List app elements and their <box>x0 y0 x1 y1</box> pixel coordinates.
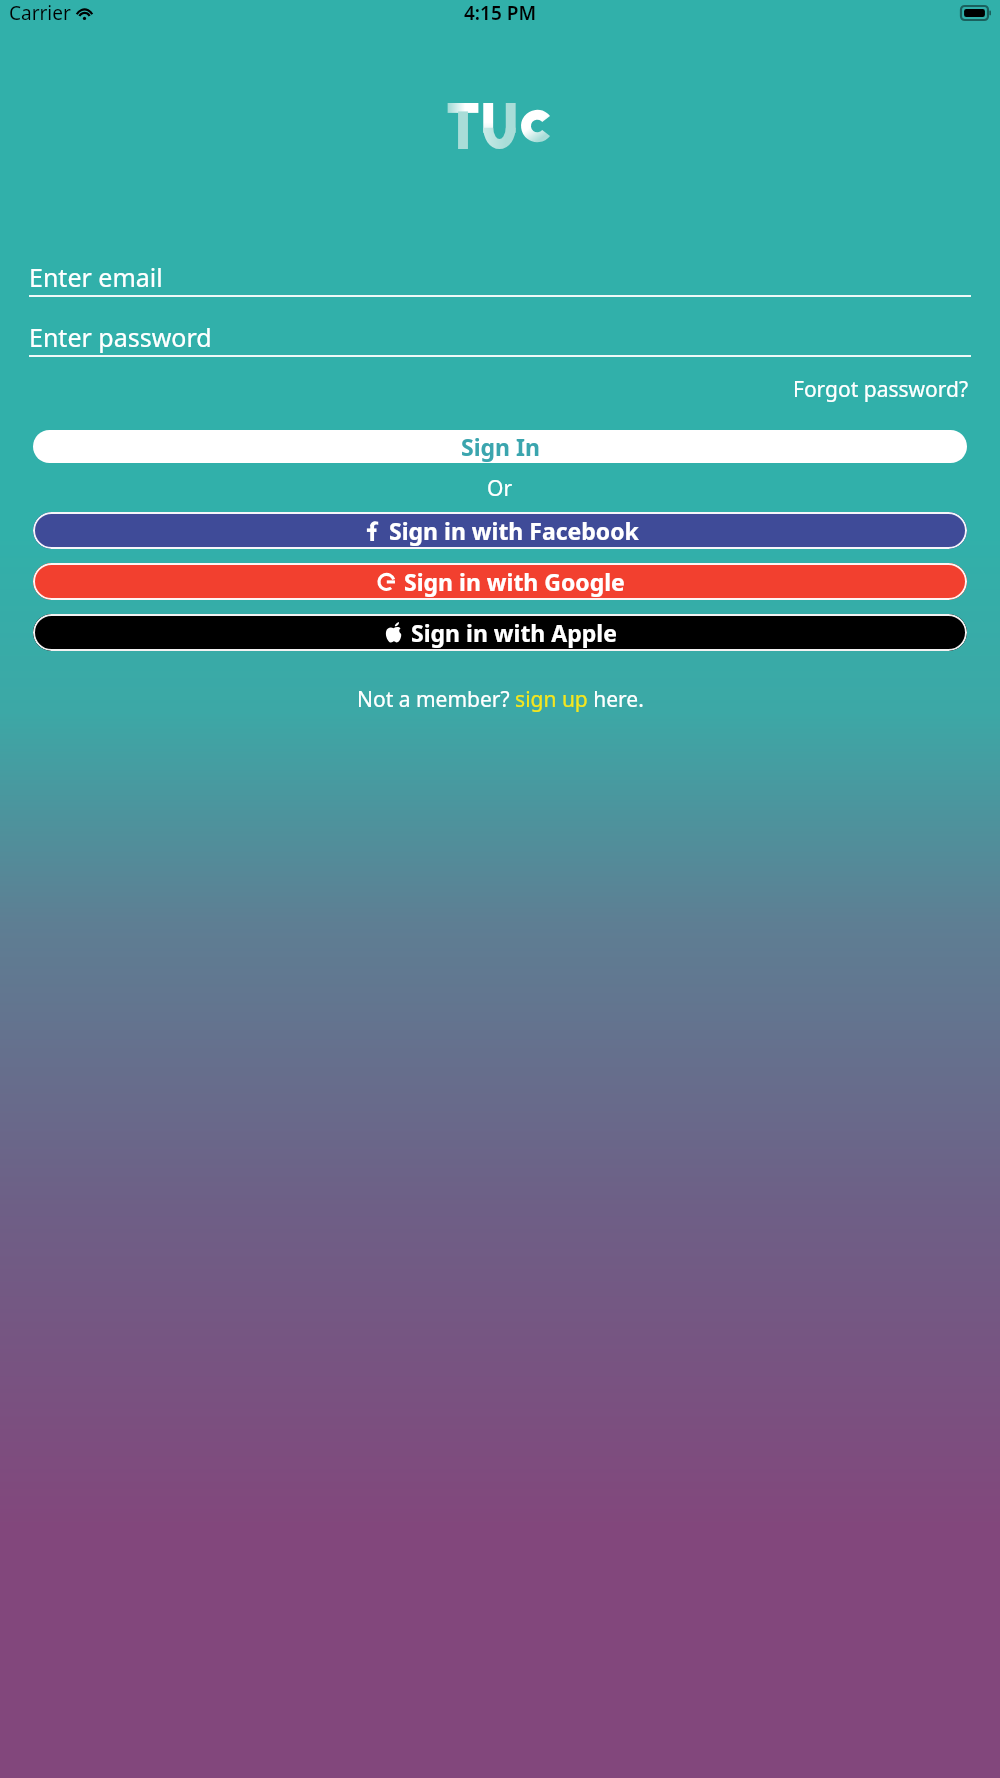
staticText: Sign in with Facebook <box>389 515 639 546</box>
button[interactable]: Sign in with Apple <box>33 614 967 651</box>
button[interactable]: Enter email <box>29 259 971 297</box>
staticText: 4:15 PM <box>464 0 537 25</box>
staticText: Carrier <box>9 0 71 25</box>
staticText: Sign in with Apple <box>411 617 617 648</box>
staticText: Sign In <box>461 431 540 462</box>
staticText: Sign in with Google <box>404 566 625 597</box>
staticText: Forgot password? <box>793 375 969 404</box>
button[interactable]: Forgot password? <box>791 371 971 408</box>
staticText: Not a member? sign up here. <box>357 685 644 714</box>
button[interactable]: Not a member? sign up here. <box>351 681 650 718</box>
button[interactable]: Sign in with Facebook <box>33 512 967 549</box>
staticText: Or <box>487 474 513 503</box>
button[interactable]: Sign in with Google <box>33 563 967 600</box>
staticText: Enter password <box>29 320 212 354</box>
button[interactable]: Enter password <box>29 319 971 357</box>
button[interactable]: Sign In <box>33 430 967 463</box>
staticText: Enter email <box>29 260 163 294</box>
